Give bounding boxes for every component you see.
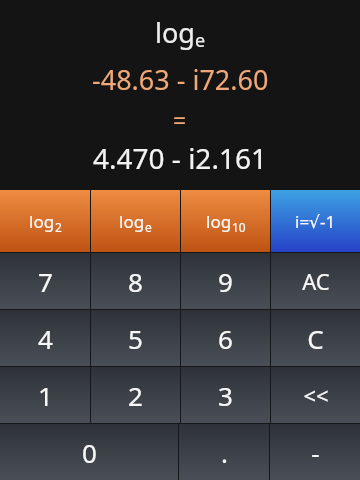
- button[interactable]: 8: [91, 253, 180, 309]
- staticText: 7: [38, 264, 53, 299]
- button[interactable]: 2: [91, 367, 180, 423]
- staticText: e: [145, 219, 152, 235]
- button[interactable]: log: [181, 190, 270, 252]
- button[interactable]: -: [270, 424, 360, 480]
- staticText: -: [311, 435, 320, 470]
- button[interactable]: 6: [181, 310, 270, 366]
- staticText: =: [173, 104, 187, 135]
- button[interactable]: 0: [0, 424, 178, 480]
- button[interactable]: 4: [0, 310, 90, 366]
- button[interactable]: 9: [181, 253, 270, 309]
- staticText: log: [29, 210, 55, 233]
- button[interactable]: log: [0, 190, 90, 252]
- button[interactable]: <<: [271, 367, 360, 423]
- staticText: C: [307, 321, 324, 356]
- staticText: 2: [55, 219, 62, 235]
- button[interactable]: log: [91, 190, 180, 252]
- staticText: log: [119, 210, 145, 233]
- staticText: .: [221, 435, 228, 470]
- staticText: -48.63 - i72.60: [92, 61, 269, 98]
- staticText: 2: [128, 378, 143, 413]
- staticText: <<: [303, 380, 329, 410]
- staticText: 5: [128, 321, 143, 356]
- button[interactable]: 3: [181, 367, 270, 423]
- button[interactable]: 1: [0, 367, 90, 423]
- staticText: AC: [302, 266, 330, 296]
- staticText: 6: [218, 321, 233, 356]
- staticText: 4: [38, 321, 53, 356]
- staticText: log: [155, 14, 195, 51]
- button[interactable]: Imaginary unit i equals square root of m…: [271, 190, 360, 252]
- staticText: 8: [128, 264, 143, 299]
- button[interactable]: AC: [271, 253, 360, 309]
- staticText: i=√-1: [295, 210, 336, 233]
- staticText: 1: [38, 378, 53, 413]
- staticText: 4.470 - i2.161: [93, 139, 267, 177]
- staticText: 9: [218, 264, 233, 299]
- staticText: 3: [218, 378, 233, 413]
- staticText: 0: [82, 435, 97, 470]
- button[interactable]: C: [271, 310, 360, 366]
- staticText: 10: [232, 219, 246, 235]
- staticText: log: [206, 210, 232, 233]
- button[interactable]: .: [179, 424, 269, 480]
- button[interactable]: 7: [0, 253, 90, 309]
- button[interactable]: 5: [91, 310, 180, 366]
- staticText: e: [195, 28, 206, 53]
